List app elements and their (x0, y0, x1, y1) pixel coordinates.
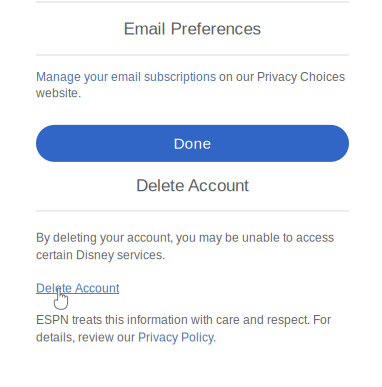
staticText: By deleting your account, you may be una… (36, 231, 334, 262)
staticText: Delete Account (36, 282, 119, 295)
staticText: ESPN treats this information with care a… (36, 313, 331, 344)
staticText: Delete Account (136, 176, 249, 195)
button[interactable]: Done (36, 125, 349, 162)
staticText: Done (173, 135, 211, 152)
staticText: Manage your email subscriptions on our P… (36, 70, 345, 100)
staticText: Email Preferences (123, 19, 261, 38)
button[interactable]: Delete Account (36, 282, 119, 295)
